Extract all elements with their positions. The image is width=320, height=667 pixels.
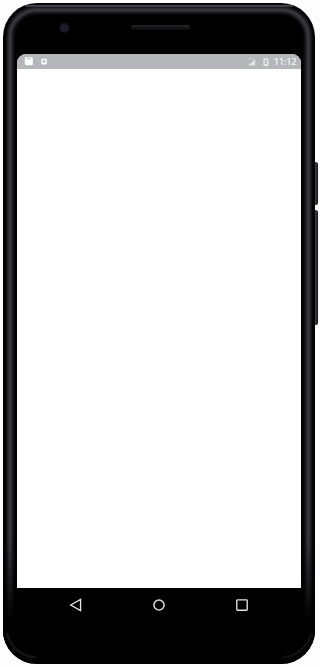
- button[interactable]: Home: [152, 598, 166, 612]
- staticText: 11:12: [274, 56, 297, 68]
- button[interactable]: Back: [69, 598, 83, 612]
- button[interactable]: Recent apps: [235, 598, 249, 612]
